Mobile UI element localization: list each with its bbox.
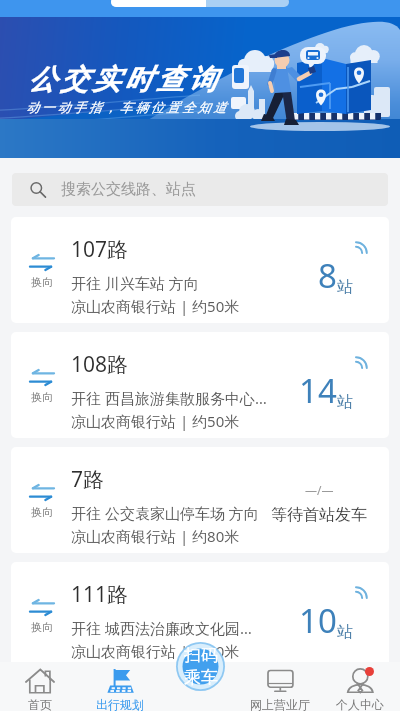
staticText: 凉山农商银行站 | 约50米 xyxy=(71,296,240,316)
other: 换向 xyxy=(24,255,60,289)
staticText: 换向 xyxy=(31,620,53,634)
staticText: 开往 川兴车站 方向 xyxy=(71,273,199,293)
staticText: 108路 xyxy=(71,350,129,379)
staticText: 乘车 xyxy=(184,667,218,688)
staticText: 10 xyxy=(299,598,337,643)
staticText: 开往 公交袁家山停车场 方向 xyxy=(71,503,259,523)
staticText: 8 xyxy=(318,253,337,298)
button[interactable]: 换向 xyxy=(11,217,389,323)
staticText: 14 xyxy=(299,368,337,413)
staticText: 网上营业厅 xyxy=(250,697,310,711)
button[interactable]: 首页 xyxy=(0,662,80,711)
button[interactable]: 网上营业厅 xyxy=(240,662,320,711)
staticText: 开往 城西法治廉政文化园… xyxy=(71,618,252,638)
staticText: —/— xyxy=(305,482,334,498)
staticText: 首页 xyxy=(28,697,52,711)
staticText: 111路 xyxy=(71,580,129,609)
staticText: 出行规划 xyxy=(96,697,144,711)
staticText: 等待首站发车 xyxy=(271,505,367,525)
staticText: 换向 xyxy=(31,390,53,404)
staticText: 搜索公交线路、站点 xyxy=(61,180,196,199)
button[interactable]: 搜索公交线路、站点 xyxy=(12,173,388,206)
staticText: 凉山农商银行站 | 约80米 xyxy=(71,526,240,546)
staticText: 动一动手指，车辆位置全知道 xyxy=(26,99,229,115)
staticText: 凉山农商银行站 | 约50米 xyxy=(71,411,240,431)
button[interactable]: 换向 xyxy=(11,332,389,438)
staticText: 站 xyxy=(337,622,353,642)
staticText: 换向 xyxy=(31,505,53,519)
other: 换向 xyxy=(24,600,60,634)
button[interactable]: 个人中心 xyxy=(320,662,400,711)
staticText: 扫码 xyxy=(184,645,218,666)
staticText: 凉山农商银行站 | 约90米 xyxy=(71,641,240,661)
staticText: 开往 西昌旅游集散服务中心… xyxy=(71,388,267,408)
staticText: 7路 xyxy=(71,465,105,494)
button[interactable]: 扫码乘车 xyxy=(164,642,237,691)
button[interactable]: 换向 xyxy=(11,562,389,668)
staticText: 站 xyxy=(337,277,353,297)
staticText: 换向 xyxy=(31,275,53,289)
staticText: 个人中心 xyxy=(336,697,384,711)
other: 换向 xyxy=(24,485,60,519)
other: 换向 xyxy=(24,370,60,404)
staticText: 站 xyxy=(337,392,353,412)
button[interactable]: 换向 xyxy=(11,447,389,553)
staticText: 公交实时查询 xyxy=(26,62,218,97)
button[interactable]: 出行规划 xyxy=(80,662,160,711)
staticText: 107路 xyxy=(71,235,129,264)
